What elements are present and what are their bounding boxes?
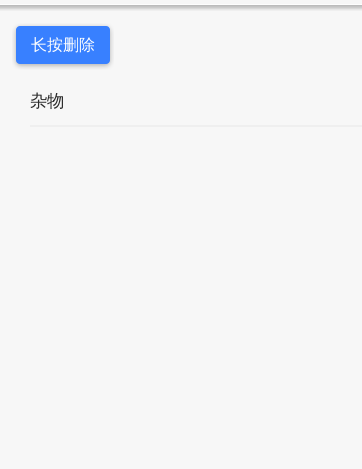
button[interactable]: 长按删除 (16, 26, 110, 64)
staticText: 杂物 (30, 90, 64, 112)
staticText: 长按删除 (31, 35, 95, 55)
button[interactable]: 杂物 (0, 77, 362, 125)
